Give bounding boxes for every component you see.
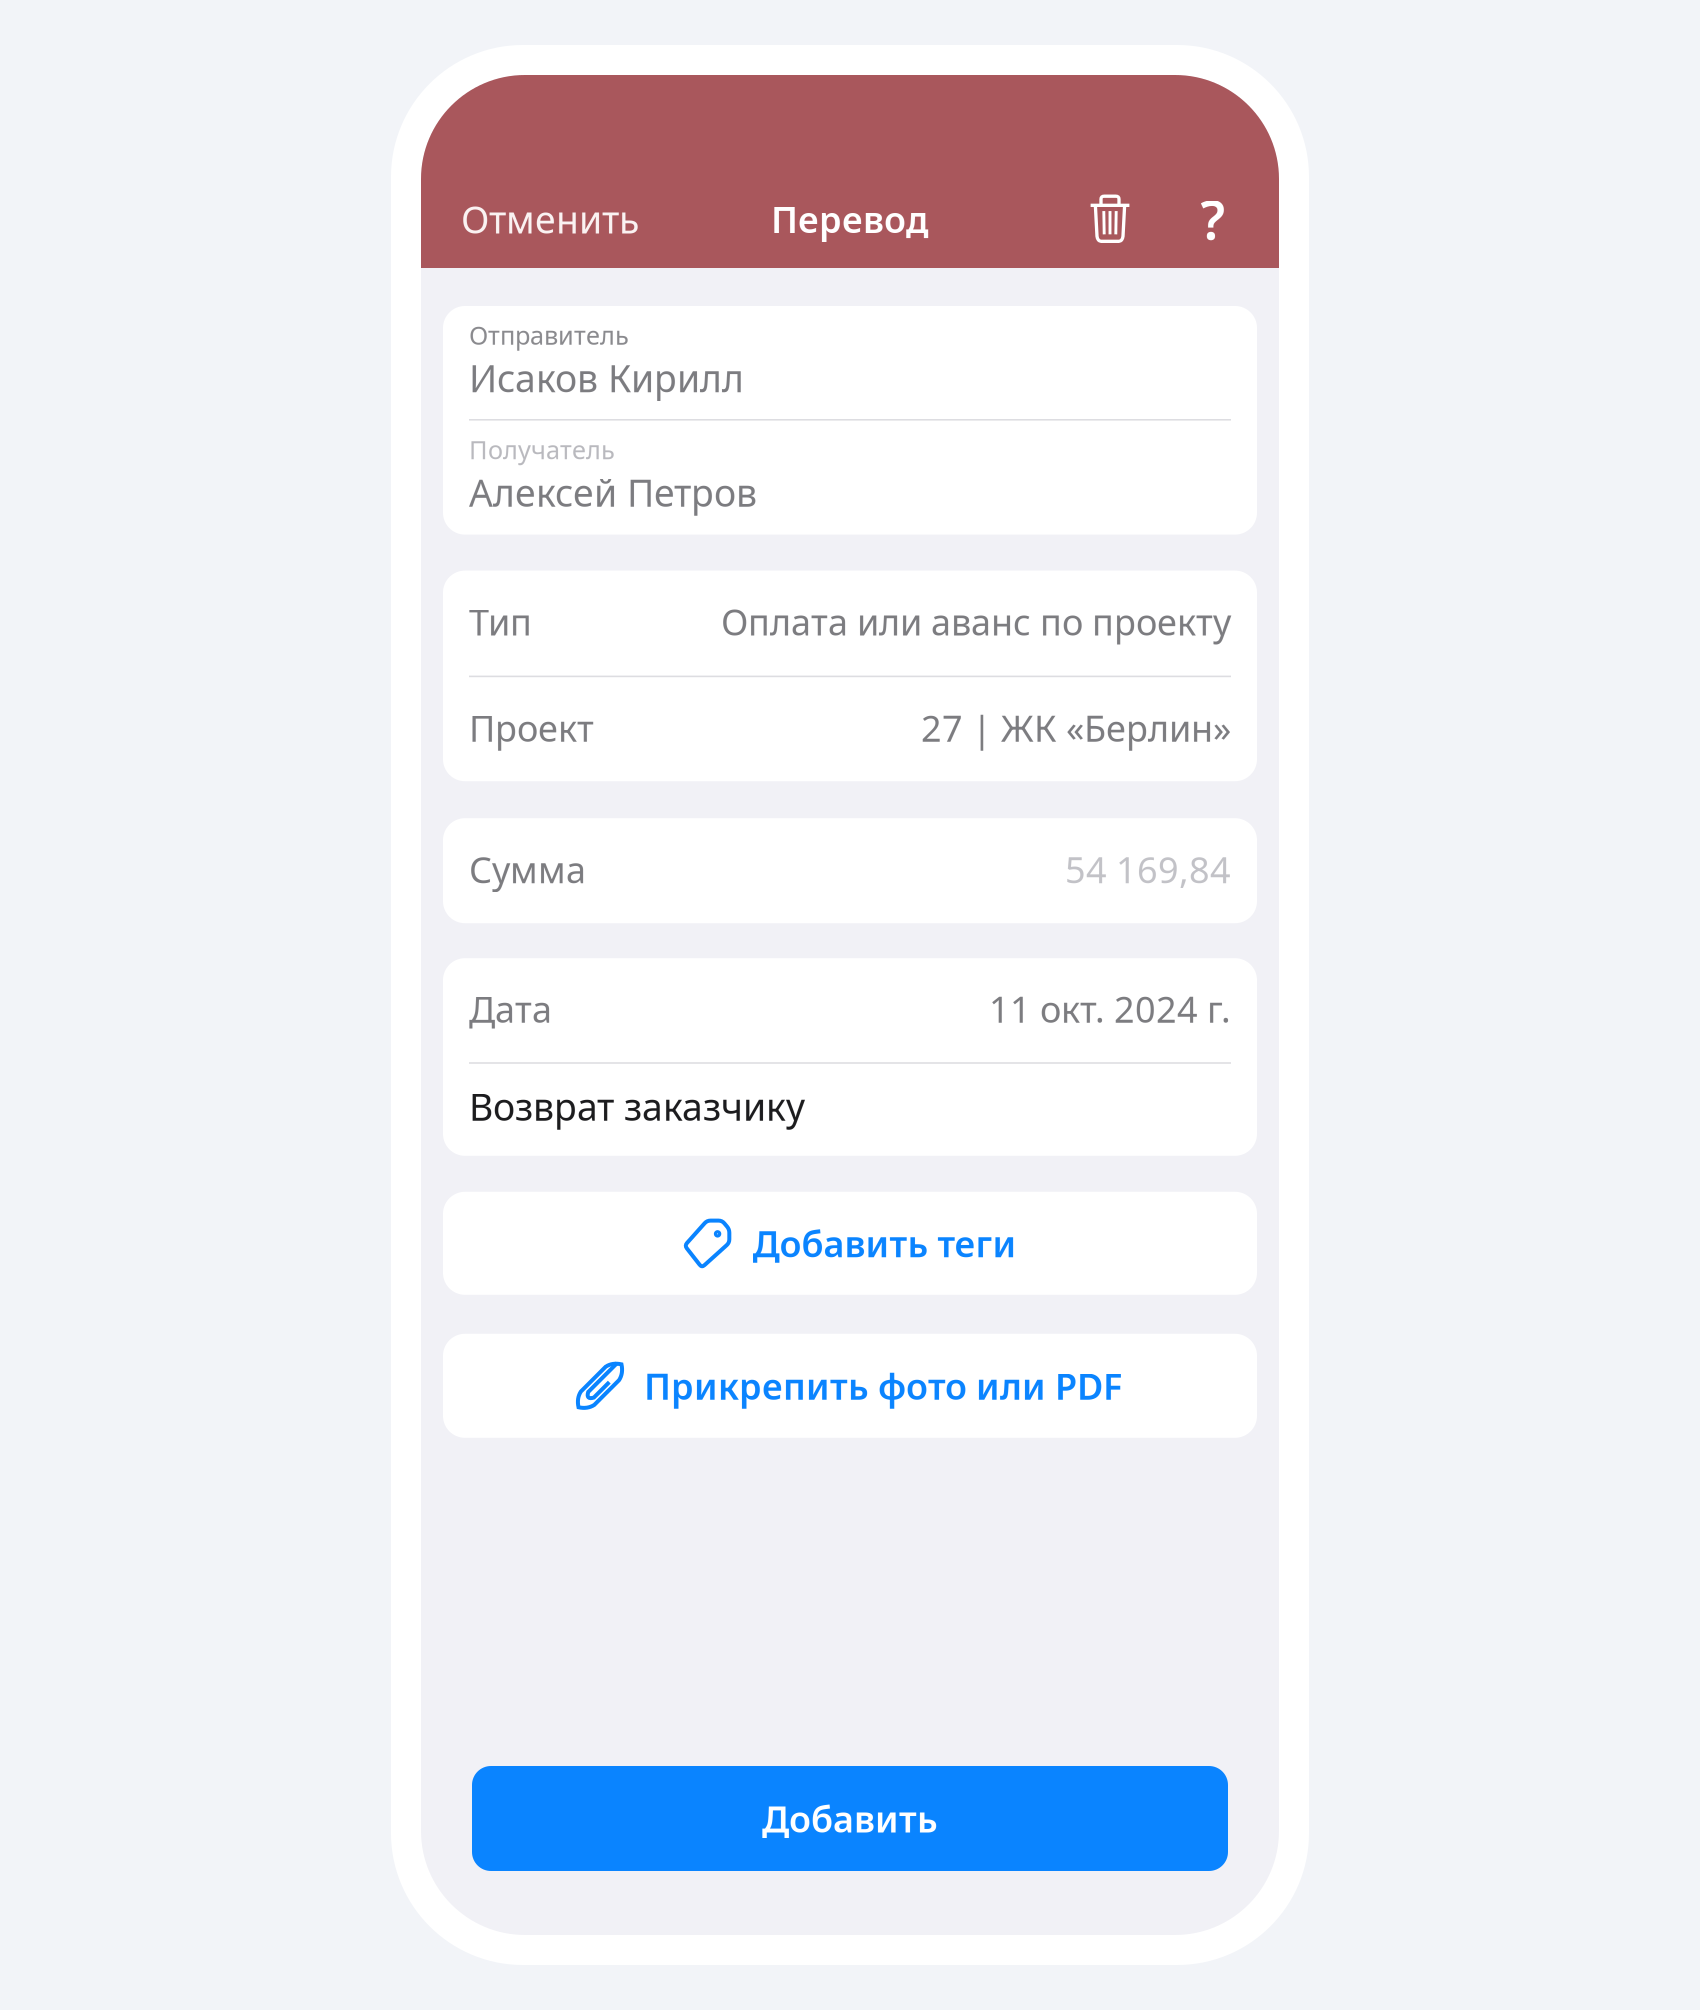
button[interactable]: Прикрепить фото или PDF bbox=[443, 1334, 1257, 1438]
staticText: Перевод bbox=[771, 195, 929, 243]
staticText: 54 169,84 bbox=[1065, 845, 1231, 893]
staticText: Добавить bbox=[762, 1795, 938, 1842]
staticText: 11 окт. 2024 г. bbox=[989, 985, 1231, 1033]
staticText: Алексей Петров bbox=[469, 468, 757, 517]
button[interactable]: Удалить bbox=[1036, 184, 1184, 254]
staticText: Дата bbox=[469, 985, 552, 1033]
staticText: ? bbox=[1200, 184, 1225, 254]
staticText: Добавить теги bbox=[752, 1219, 1016, 1267]
staticText: Оплата или аванс по проекту bbox=[721, 598, 1231, 645]
staticText: Возврат заказчику bbox=[469, 1081, 805, 1131]
staticText: Отправитель bbox=[469, 318, 629, 352]
button[interactable]: Отменить bbox=[421, 184, 659, 254]
staticText: 27 | ЖК «Берлин» bbox=[921, 704, 1231, 752]
staticText: Проект bbox=[469, 704, 594, 752]
staticText: Тип bbox=[469, 598, 532, 645]
staticText: Исаков Кирилл bbox=[469, 353, 744, 403]
button[interactable]: Добавить теги bbox=[443, 1192, 1257, 1295]
staticText: Сумма bbox=[469, 845, 586, 893]
staticText: Отменить bbox=[461, 194, 639, 244]
staticText: Получатель bbox=[469, 433, 615, 466]
button[interactable]: Добавить bbox=[472, 1766, 1228, 1871]
button[interactable]: Справка bbox=[1184, 184, 1279, 254]
staticText: Прикрепить фото или PDF bbox=[644, 1362, 1122, 1410]
